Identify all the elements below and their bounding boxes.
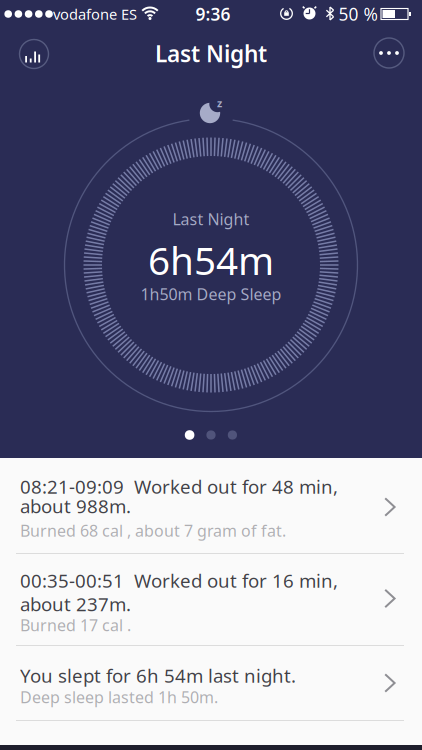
staticText: about 988m. <box>20 494 131 518</box>
staticText: 00:35-00:51 Worked out for 16 min, <box>20 568 338 593</box>
staticText: Deep sleep lasted 1h 50m. <box>20 686 218 708</box>
button[interactable] <box>374 38 404 68</box>
staticText: 6h54m <box>148 234 274 286</box>
staticText: vodafone ES <box>53 4 137 24</box>
staticText: Last Night <box>155 38 267 68</box>
staticText: Burned 68 cal , about 7 gram of fat. <box>20 520 286 541</box>
staticText: 50 % <box>338 2 377 25</box>
staticText: You slept for 6h 54m last night. <box>20 663 296 688</box>
staticText: 9:36 <box>195 2 230 25</box>
staticText: z <box>217 96 222 110</box>
staticText: 1h50m Deep Sleep <box>140 283 281 305</box>
staticText: about 237m. <box>20 592 131 616</box>
button[interactable] <box>19 39 48 68</box>
staticText: Burned 17 cal . <box>20 614 131 636</box>
button[interactable]: 08:21-09:09 Worked out for 48 min, <box>0 458 422 553</box>
staticText: 08:21-09:09 Worked out for 48 min, <box>20 474 338 499</box>
button[interactable]: You slept for 6h 54m last night. <box>0 646 422 720</box>
button[interactable]: 00:35-00:51 Worked out for 16 min, <box>0 554 422 645</box>
staticText: Last Night <box>172 208 249 230</box>
